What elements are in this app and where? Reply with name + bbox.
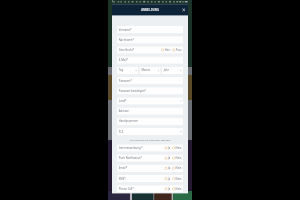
button[interactable]: Herr bbox=[161, 48, 171, 52]
staticText: Herr bbox=[165, 48, 171, 52]
button[interactable]: PLZ bbox=[117, 128, 183, 135]
button[interactable]: Push Notification* bbox=[117, 155, 183, 162]
staticText: PLZ bbox=[119, 130, 123, 133]
button[interactable]: Email* bbox=[117, 165, 183, 172]
button[interactable]: Internetwerbung * bbox=[117, 144, 183, 152]
button[interactable]: Passwort bestätigen* bbox=[117, 87, 183, 94]
button[interactable]: Nein bbox=[172, 187, 182, 191]
staticText: Nachname* bbox=[119, 38, 134, 42]
button[interactable]: Monat bbox=[140, 67, 161, 74]
staticText: Monat bbox=[141, 69, 150, 72]
staticText: Jahr bbox=[164, 69, 169, 72]
button[interactable]: Ja bbox=[165, 156, 170, 160]
staticText: Ja bbox=[168, 177, 170, 180]
staticText: Nein bbox=[176, 187, 182, 191]
button[interactable]: Adresse bbox=[117, 108, 183, 115]
staticText: Phone Call* bbox=[119, 187, 134, 191]
button[interactable]: Phone Call* bbox=[117, 185, 183, 192]
staticText: Vorname* bbox=[119, 28, 132, 31]
button[interactable]: Ja bbox=[165, 187, 170, 191]
staticText: Geschlecht* bbox=[119, 48, 134, 52]
button[interactable]: Geschlecht* bbox=[117, 46, 183, 54]
staticText: Nein bbox=[176, 156, 182, 160]
staticText: ANMELDUNG bbox=[141, 8, 159, 12]
staticText: Tag bbox=[119, 69, 123, 72]
staticText: Adresse bbox=[119, 109, 129, 113]
button[interactable]: Frau bbox=[172, 48, 182, 52]
staticText: Frau bbox=[176, 48, 182, 52]
button[interactable]: Ja bbox=[165, 146, 170, 150]
staticText: Passwort bestätigen* bbox=[119, 89, 146, 93]
button[interactable]: Ja bbox=[165, 167, 170, 170]
staticText: Ja bbox=[168, 156, 170, 160]
button[interactable]: Nein bbox=[172, 146, 182, 150]
button[interactable]: Passwort* bbox=[117, 77, 183, 84]
staticText: Wie möchten Sie informiert werden? bbox=[117, 138, 183, 141]
staticText: Email* bbox=[119, 167, 127, 170]
button[interactable]: Nein bbox=[172, 167, 182, 170]
button[interactable]: SMS* bbox=[117, 175, 183, 182]
staticText: Nein bbox=[176, 167, 182, 170]
staticText: Passwort* bbox=[119, 79, 132, 82]
button[interactable]: Handynummer bbox=[117, 118, 183, 125]
staticText: Ja bbox=[168, 146, 170, 150]
staticText: Ja bbox=[168, 167, 170, 170]
staticText: Push Notification* bbox=[119, 156, 142, 160]
button[interactable]: Nachname* bbox=[117, 36, 183, 43]
button[interactable]: Land* bbox=[117, 97, 183, 105]
button[interactable]: Close bbox=[181, 7, 187, 13]
button[interactable]: E-Mail* bbox=[117, 57, 183, 64]
button[interactable]: Ja bbox=[165, 177, 170, 180]
staticText: Internetwerbung * bbox=[119, 146, 143, 150]
staticText: Nein bbox=[176, 146, 182, 150]
button[interactable]: Vorname* bbox=[117, 26, 183, 33]
staticText: Land* bbox=[119, 99, 127, 103]
staticText: Handynummer bbox=[119, 120, 138, 123]
staticText: SMS* bbox=[119, 177, 126, 180]
button[interactable]: Nein bbox=[172, 156, 182, 160]
staticText: E-Mail* bbox=[119, 58, 128, 62]
staticText: Nein bbox=[176, 177, 182, 180]
button[interactable]: Nein bbox=[172, 177, 182, 180]
button[interactable]: Tag bbox=[117, 67, 138, 74]
button[interactable]: Jahr bbox=[162, 67, 183, 74]
staticText: Ja bbox=[168, 187, 170, 191]
